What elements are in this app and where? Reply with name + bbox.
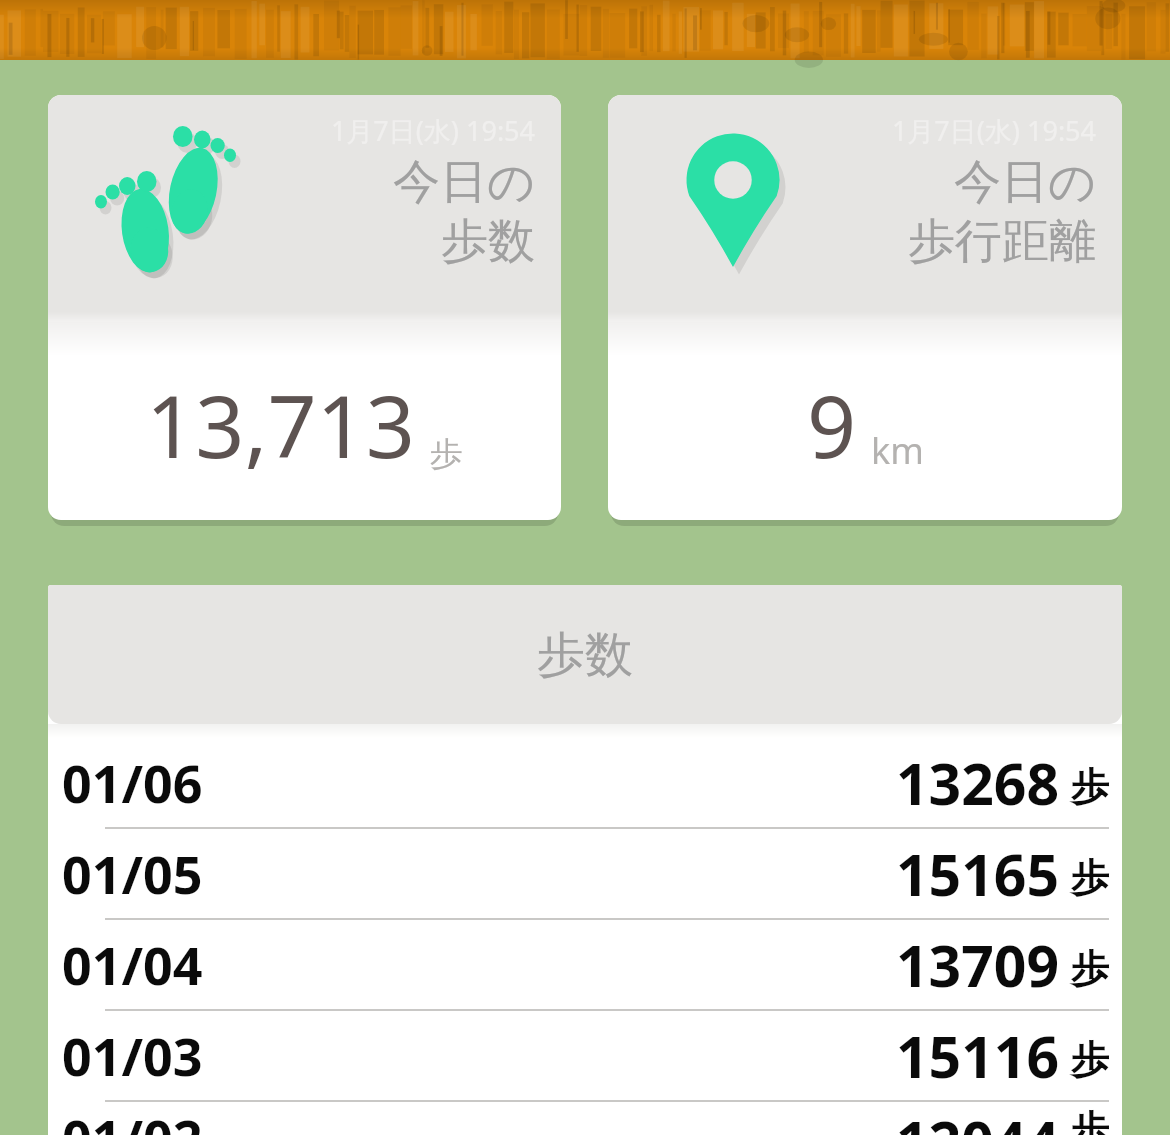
button[interactable]: 01/04 — [48, 920, 1122, 1009]
staticText: 9 — [807, 366, 857, 483]
button[interactable]: 歩行距離 — [608, 95, 1122, 520]
staticText: 13,713 — [146, 366, 416, 483]
staticText: 歩 — [430, 433, 463, 475]
button[interactable]: 01/02 — [48, 1102, 1122, 1135]
staticText: 13268 — [896, 744, 1060, 822]
staticText: 歩行距離 — [908, 212, 1096, 271]
staticText: 12044 — [896, 1102, 1060, 1135]
staticText: 01/03 — [62, 1020, 203, 1091]
staticText: 今日の — [392, 153, 535, 212]
staticText: 歩 — [1071, 1036, 1109, 1084]
button[interactable]: 01/05 — [48, 829, 1122, 918]
staticText: 13709 — [896, 926, 1060, 1004]
staticText: 01/02 — [62, 1102, 203, 1135]
staticText: 歩数 — [441, 212, 535, 271]
staticText: km — [871, 426, 924, 475]
staticText: 歩数 — [537, 625, 633, 685]
staticText: 今日の — [953, 153, 1096, 212]
staticText: 歩 — [1071, 854, 1109, 902]
staticText: 歩 — [1071, 945, 1109, 993]
staticText: 歩 — [1071, 763, 1109, 811]
button[interactable]: 01/03 — [48, 1011, 1122, 1100]
staticText: 1月7日(水) 19:54 — [891, 112, 1096, 149]
button[interactable]: 01/06 — [48, 738, 1122, 827]
button[interactable]: 歩数 — [48, 95, 561, 520]
staticText: 1月7日(水) 19:54 — [330, 112, 535, 149]
staticText: 歩 — [1071, 1106, 1109, 1135]
staticText: 15116 — [896, 1017, 1060, 1095]
staticText: 01/05 — [62, 838, 203, 909]
other: 歩数 — [98, 123, 248, 273]
other: 歩行距離 — [658, 123, 808, 273]
staticText: 01/06 — [62, 747, 203, 818]
staticText: 15165 — [896, 835, 1060, 913]
staticText: 01/04 — [62, 929, 203, 1000]
